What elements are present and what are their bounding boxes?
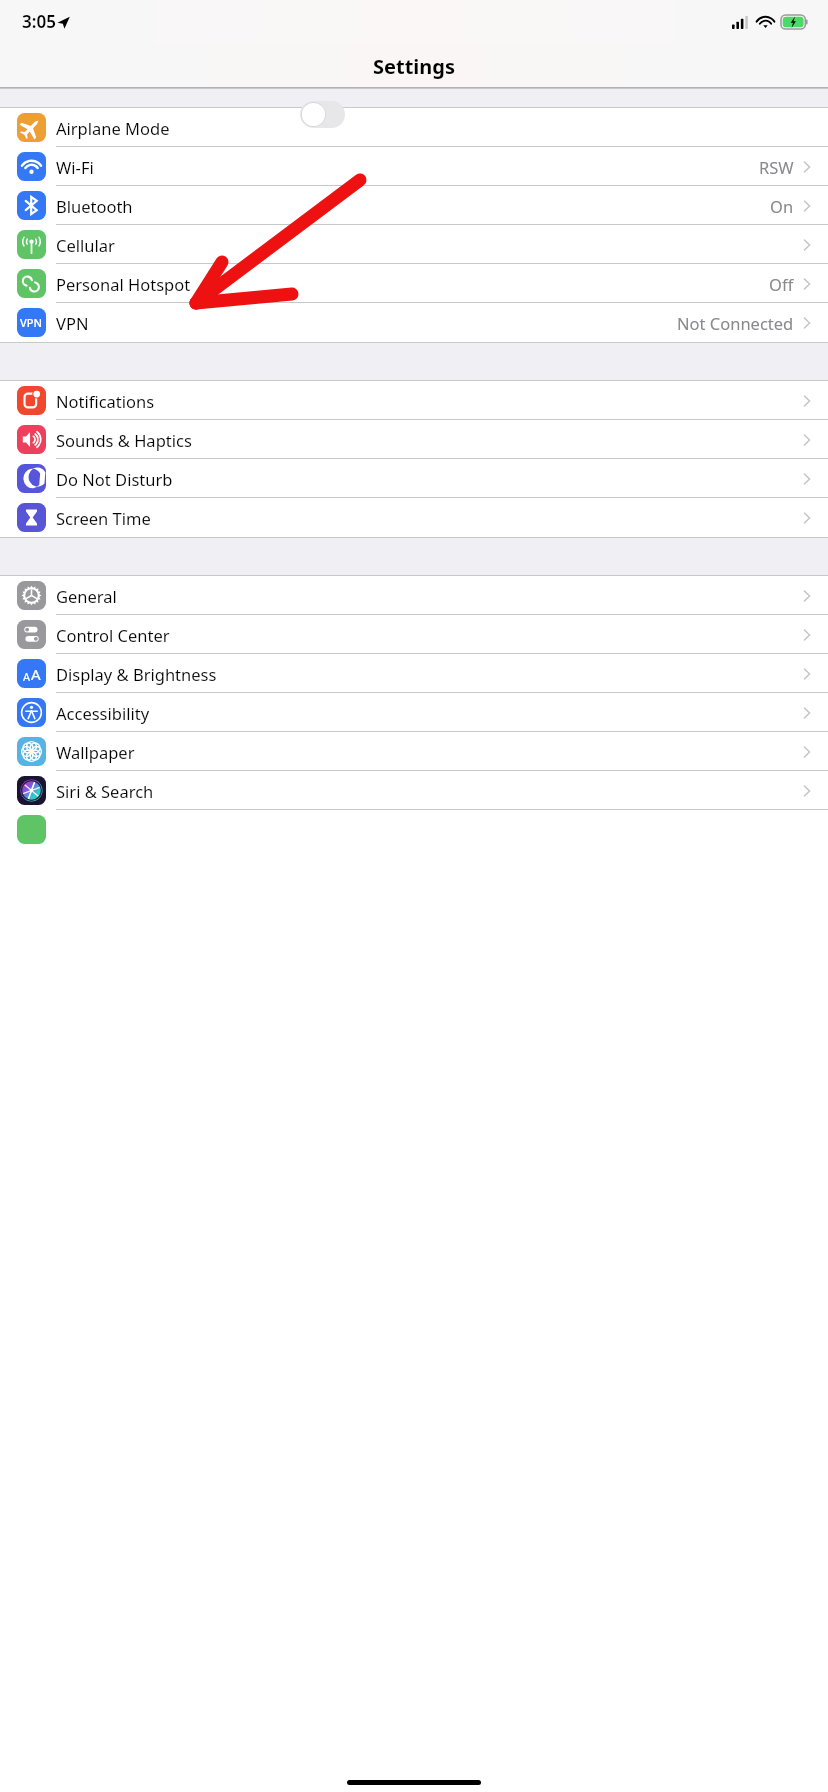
button[interactable]: Do Not Disturb <box>0 459 828 498</box>
button[interactable]: Control Center <box>0 615 828 654</box>
staticText: Control Center <box>56 624 170 646</box>
button[interactable]: Cellular <box>0 225 828 264</box>
staticText: Settings <box>373 53 455 80</box>
staticText: Bluetooth <box>56 195 133 217</box>
staticText: Off <box>769 273 794 295</box>
button[interactable]: Siri & Search <box>0 771 828 810</box>
staticText: Notifications <box>56 390 155 412</box>
staticText: Accessibility <box>56 702 150 724</box>
staticText: Wallpaper <box>56 741 135 763</box>
button[interactable]: General <box>0 576 828 615</box>
staticText: Sounds & Haptics <box>56 429 192 451</box>
staticText: Do Not Disturb <box>56 468 173 490</box>
staticText: Personal Hotspot <box>56 273 191 295</box>
button[interactable]: Sounds & Haptics <box>0 420 828 459</box>
button[interactable] <box>0 810 828 849</box>
button[interactable]: Wallpaper <box>0 732 828 771</box>
staticText: A <box>23 669 31 684</box>
staticText: Siri & Search <box>56 780 154 802</box>
button[interactable]: Wi-Fi <box>0 147 828 186</box>
staticText: On <box>770 195 794 217</box>
staticText: Not Connected <box>677 312 794 334</box>
staticText: Airplane Mode <box>56 117 170 139</box>
staticText: A <box>31 664 41 684</box>
button[interactable]: Bluetooth <box>0 186 828 225</box>
staticText: Cellular <box>56 234 115 256</box>
button[interactable]: Personal Hotspot <box>0 264 828 303</box>
button[interactable]: Airplane Mode toggle <box>300 101 345 128</box>
staticText: 3:05 <box>22 10 56 33</box>
staticText: Display & Brightness <box>56 663 217 685</box>
button[interactable]: A <box>0 654 828 693</box>
button[interactable]: Notifications <box>0 381 828 420</box>
staticText: VPN <box>20 315 43 330</box>
staticText: Wi-Fi <box>56 156 94 178</box>
staticText: General <box>56 585 117 607</box>
button[interactable]: VPN <box>0 303 828 342</box>
staticText: Screen Time <box>56 507 151 529</box>
button[interactable]: Airplane Mode <box>0 108 828 147</box>
staticText: VPN <box>56 312 89 334</box>
button[interactable]: Screen Time <box>0 498 828 537</box>
button[interactable]: Accessibility <box>0 693 828 732</box>
staticText: RSW <box>759 156 794 178</box>
